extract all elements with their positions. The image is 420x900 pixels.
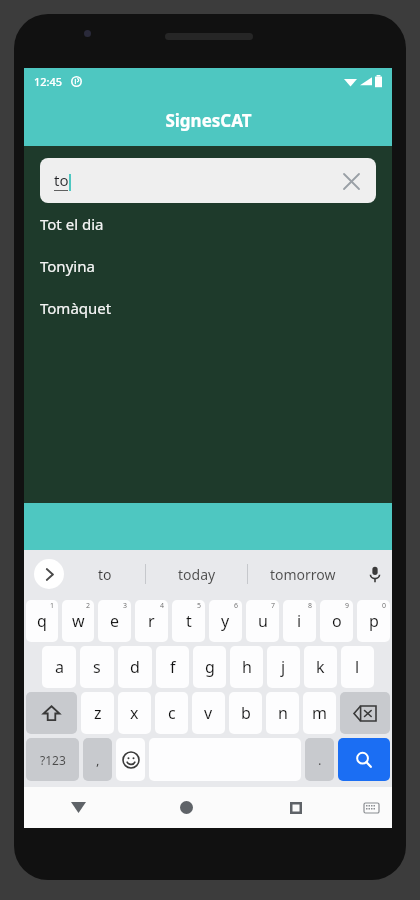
button[interactable]: n — [266, 692, 299, 734]
staticText: 8 — [308, 601, 313, 611]
staticText: r — [148, 610, 155, 632]
staticText: p — [369, 610, 379, 632]
button[interactable]: Tomàquet — [24, 287, 392, 329]
staticText: Tot el dia — [40, 214, 104, 234]
button[interactable]: t — [172, 600, 205, 642]
staticText: z — [94, 702, 102, 724]
button[interactable]: Emoji — [116, 738, 145, 781]
button[interactable]: l — [341, 646, 374, 688]
staticText: l — [355, 656, 360, 678]
button[interactable]: today — [146, 550, 247, 598]
staticText: Tomàquet — [40, 298, 112, 318]
button[interactable]: . — [305, 738, 334, 781]
button[interactable]: Search — [338, 738, 390, 781]
button[interactable]: Recents — [241, 787, 350, 828]
button[interactable]: p — [357, 600, 390, 642]
staticText: SignesCAT — [165, 109, 252, 132]
staticText: tomorrow — [270, 565, 336, 584]
staticText: a — [55, 656, 64, 678]
staticText: 0 — [382, 601, 387, 611]
staticText: 7 — [271, 601, 276, 611]
staticText: 2 — [86, 601, 91, 611]
staticText: q — [37, 610, 47, 632]
button[interactable]: s — [80, 646, 114, 688]
staticText: today — [178, 565, 216, 584]
button[interactable]: o — [320, 600, 353, 642]
staticText: b — [241, 702, 251, 724]
staticText: 4 — [160, 601, 165, 611]
button[interactable]: b — [229, 692, 262, 734]
button[interactable]: j — [267, 646, 300, 688]
staticText: g — [205, 656, 215, 678]
button[interactable]: y — [209, 600, 242, 642]
staticText: k — [316, 656, 325, 678]
staticText: v — [204, 702, 213, 724]
staticText: f — [170, 656, 176, 678]
staticText: . — [318, 751, 322, 769]
staticText: x — [130, 702, 139, 724]
staticText: 12:45 — [34, 74, 63, 89]
staticText: y — [221, 610, 230, 632]
button[interactable]: to — [64, 550, 145, 598]
staticText: ?123 — [40, 752, 66, 768]
button[interactable]: Backspace — [340, 692, 390, 734]
button[interactable]: Back — [24, 787, 132, 828]
button[interactable]: Home — [132, 787, 241, 828]
button[interactable]: i — [283, 600, 316, 642]
staticText: o — [332, 610, 342, 632]
staticText: n — [278, 702, 288, 724]
button[interactable]: Tonyina — [24, 245, 392, 287]
staticText: u — [258, 610, 268, 632]
button[interactable]: Clear search — [340, 170, 362, 192]
button[interactable]: x — [118, 692, 151, 734]
staticText: 5 — [197, 601, 202, 611]
button[interactable]: f — [156, 646, 189, 688]
button[interactable]: q — [26, 600, 58, 642]
staticText: c — [168, 702, 176, 724]
button[interactable]: g — [193, 646, 226, 688]
button[interactable]: ?123 — [26, 738, 79, 781]
button[interactable]: tomorrow — [248, 550, 358, 598]
button[interactable]: Tot el dia — [24, 203, 392, 245]
button[interactable]: a — [42, 646, 76, 688]
button[interactable]: m — [303, 692, 336, 734]
button[interactable]: z — [81, 692, 114, 734]
button[interactable]: e — [98, 600, 131, 642]
button[interactable]: v — [192, 692, 225, 734]
staticText: s — [93, 656, 101, 678]
staticText: , — [96, 751, 100, 769]
staticText: 3 — [123, 601, 128, 611]
button[interactable]: d — [118, 646, 152, 688]
staticText: e — [110, 610, 120, 632]
button[interactable]: Keyboard switcher — [350, 787, 392, 828]
button[interactable]: Voice input — [358, 550, 392, 598]
staticText: w — [72, 610, 85, 632]
button[interactable]: c — [155, 692, 188, 734]
button[interactable]: k — [304, 646, 337, 688]
staticText: d — [130, 656, 140, 678]
staticText: 9 — [345, 601, 350, 611]
staticText: to — [54, 170, 69, 190]
button[interactable]: More suggestions — [34, 559, 64, 589]
button[interactable]: to — [40, 158, 376, 203]
button[interactable]: , — [83, 738, 112, 781]
staticText: to — [98, 565, 112, 584]
staticText: j — [281, 656, 286, 678]
button[interactable]: Shift — [26, 692, 77, 734]
staticText: 1 — [50, 601, 55, 611]
staticText: t — [186, 610, 192, 632]
staticText: m — [312, 702, 327, 724]
button[interactable]: h — [230, 646, 263, 688]
button[interactable]: u — [246, 600, 279, 642]
button[interactable]: w — [62, 600, 94, 642]
button[interactable]: r — [135, 600, 168, 642]
staticText: h — [242, 656, 252, 678]
staticText: 6 — [234, 601, 239, 611]
staticText: Tonyina — [40, 256, 95, 276]
staticText: i — [297, 610, 302, 632]
